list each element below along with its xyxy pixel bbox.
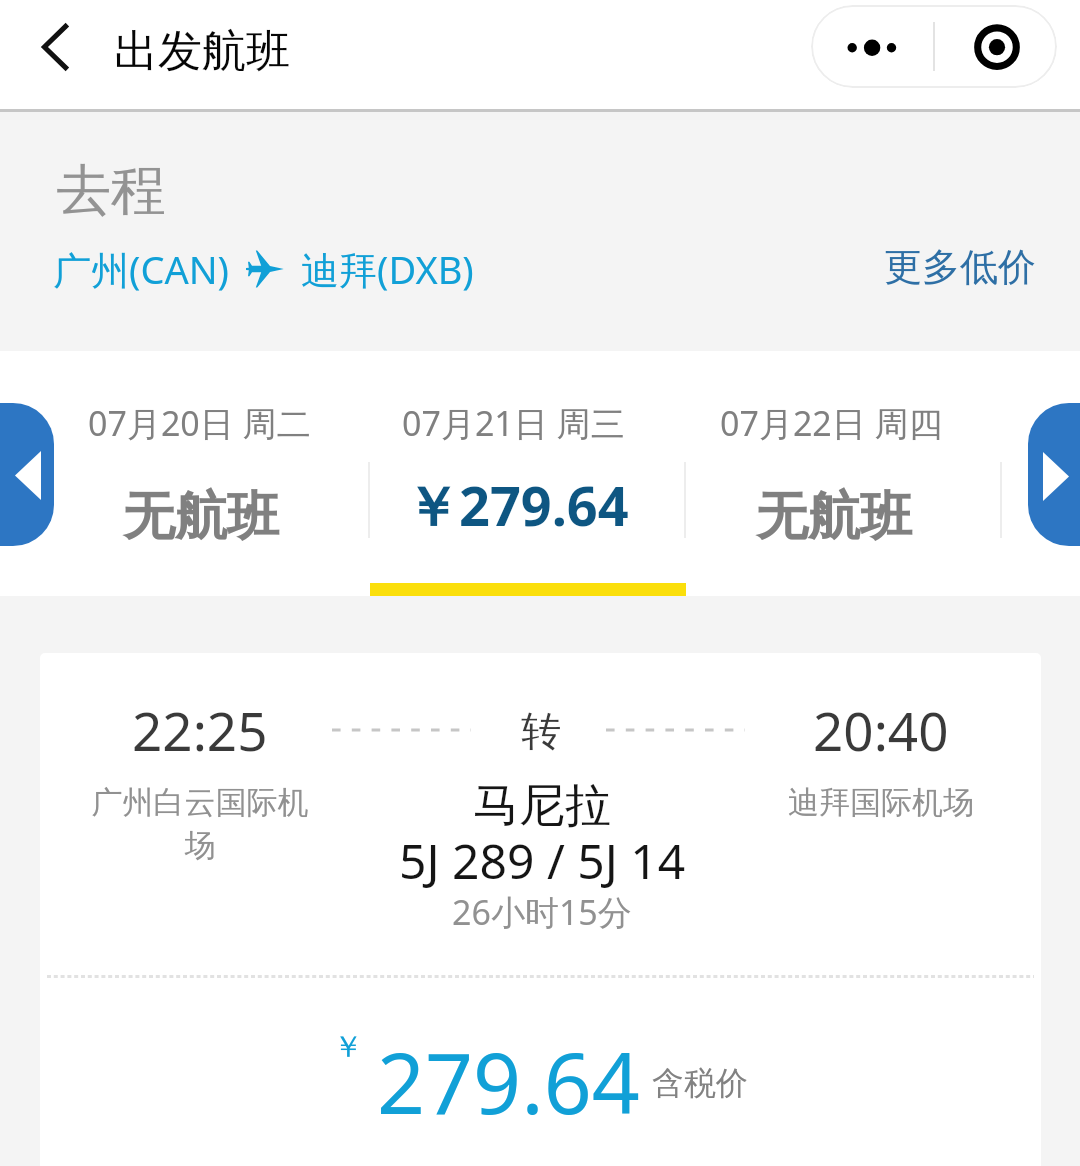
staticText: 07月22日 周四 [720, 400, 943, 446]
button[interactable]: More options [811, 5, 934, 88]
staticText: 马尼拉 [473, 777, 611, 835]
staticText: 广州白云国际机场 [85, 783, 315, 865]
button[interactable]: 更多低价 [884, 243, 1036, 291]
button[interactable] [368, 351, 684, 596]
staticText: 07月20日 周二 [88, 400, 311, 446]
button[interactable]: Close mini program [935, 5, 1057, 88]
staticText: 更多低价 [884, 243, 1036, 291]
staticText: 26小时15分 [452, 889, 632, 935]
staticText: 20:40 [813, 694, 949, 766]
staticText: 转 [521, 706, 561, 756]
staticText: 无航班 [756, 484, 912, 550]
staticText: 279.64 [377, 1024, 640, 1138]
staticText: 22:25 [132, 694, 268, 766]
staticText: ￥ [333, 1028, 363, 1066]
staticText: 07月21日 周三 [402, 400, 625, 446]
staticText: 无航班 [123, 484, 279, 550]
staticText: 迪拜(DXB) [301, 243, 474, 295]
button[interactable]: Previous day [0, 403, 54, 546]
staticText: 出发航班 [114, 24, 290, 79]
button[interactable] [685, 351, 1001, 596]
staticText: 含税价 [652, 1063, 748, 1103]
button[interactable] [52, 351, 368, 596]
staticText: 广州(CAN) [53, 243, 229, 295]
staticText: 5J 289 / 5J 14 [399, 828, 686, 893]
staticText: ￥279.64 [405, 468, 629, 542]
button[interactable]: Back [20, 12, 90, 82]
button[interactable]: Next day [1028, 403, 1080, 546]
button[interactable]: 22:25 [40, 653, 1041, 1166]
staticText: 去程 [56, 156, 166, 225]
staticText: 迪拜国际机场 [788, 783, 974, 822]
